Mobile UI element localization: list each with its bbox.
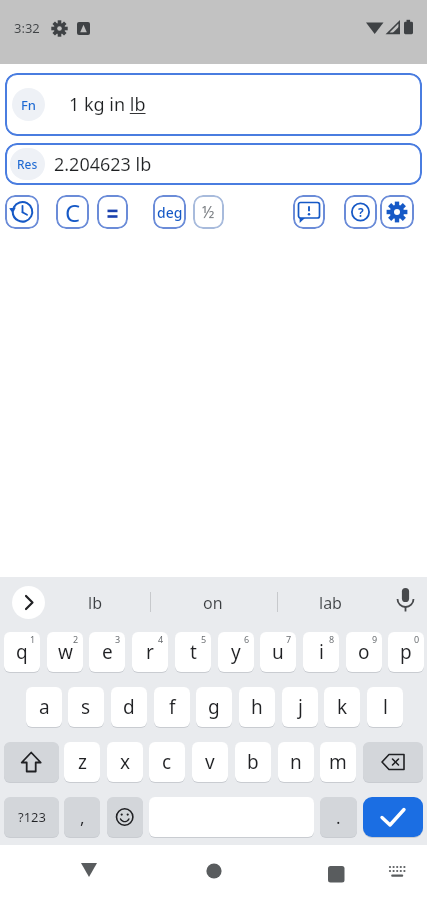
staticText: ½ bbox=[202, 201, 215, 223]
button[interactable]: t bbox=[175, 632, 211, 672]
button[interactable]: j bbox=[282, 687, 318, 727]
button[interactable] bbox=[4, 742, 59, 782]
staticText: , bbox=[80, 806, 85, 829]
staticText: on bbox=[203, 592, 223, 614]
staticText: 1 kg in lb bbox=[69, 92, 146, 117]
button[interactable]: z bbox=[64, 742, 100, 782]
staticText: 0 bbox=[414, 633, 420, 645]
button[interactable]: e bbox=[89, 632, 125, 672]
button[interactable] bbox=[363, 742, 423, 782]
button[interactable]: deg bbox=[153, 195, 186, 229]
staticText: s bbox=[81, 694, 91, 720]
staticText: h bbox=[251, 694, 263, 720]
button[interactable]: s bbox=[68, 687, 104, 727]
button[interactable]: c bbox=[149, 742, 185, 782]
button[interactable]: on bbox=[173, 586, 253, 619]
staticText: v bbox=[205, 749, 215, 775]
button[interactable]: w bbox=[47, 632, 83, 672]
button[interactable] bbox=[293, 195, 325, 229]
staticText: lb bbox=[88, 592, 102, 614]
button[interactable]: lab bbox=[290, 586, 370, 619]
button[interactable]: p bbox=[388, 632, 424, 672]
staticText: ? bbox=[358, 204, 364, 220]
staticText: e bbox=[102, 639, 113, 665]
button[interactable]: u bbox=[260, 632, 296, 672]
button[interactable]: l bbox=[367, 687, 403, 727]
staticText: g bbox=[208, 694, 220, 720]
staticText: lab bbox=[319, 592, 342, 614]
button[interactable]: v bbox=[192, 742, 228, 782]
button[interactable] bbox=[5, 143, 422, 185]
staticText: w bbox=[58, 639, 73, 665]
button[interactable] bbox=[5, 73, 422, 136]
button[interactable]: , bbox=[64, 797, 100, 837]
staticText: 3 bbox=[115, 633, 121, 645]
staticText: b bbox=[247, 749, 259, 775]
button[interactable]: d bbox=[111, 687, 147, 727]
staticText: . bbox=[336, 806, 341, 829]
staticText: z bbox=[78, 749, 87, 775]
staticText: q bbox=[16, 639, 28, 665]
button[interactable] bbox=[377, 852, 417, 892]
staticText: Fn bbox=[21, 96, 37, 114]
staticText: j bbox=[298, 694, 303, 720]
button[interactable] bbox=[107, 797, 143, 837]
staticText: o bbox=[358, 639, 370, 665]
staticText: l bbox=[383, 694, 388, 720]
button[interactable]: m bbox=[320, 742, 356, 782]
staticText: 6 bbox=[244, 633, 250, 645]
staticText: d bbox=[123, 694, 135, 720]
staticText: x bbox=[120, 749, 131, 775]
button[interactable] bbox=[194, 852, 234, 892]
button[interactable]: o bbox=[346, 632, 382, 672]
button[interactable]: h bbox=[239, 687, 275, 727]
staticText: n bbox=[290, 749, 302, 775]
staticText: m bbox=[329, 749, 347, 775]
button[interactable]: k bbox=[324, 687, 360, 727]
staticText: i bbox=[319, 639, 324, 665]
staticText: ?123 bbox=[18, 808, 46, 826]
staticText: 8 bbox=[329, 633, 335, 645]
button[interactable]: f bbox=[154, 687, 190, 727]
button[interactable]: a bbox=[26, 687, 62, 727]
button[interactable]: b bbox=[235, 742, 271, 782]
staticText: u bbox=[272, 639, 284, 665]
staticText: c bbox=[162, 749, 172, 775]
button[interactable]: ½ bbox=[193, 195, 224, 229]
staticText: t bbox=[190, 639, 197, 665]
button[interactable]: ? bbox=[344, 195, 377, 229]
button[interactable] bbox=[363, 797, 423, 837]
button[interactable] bbox=[380, 195, 414, 229]
staticText: 4 bbox=[158, 633, 164, 645]
button[interactable] bbox=[12, 586, 45, 619]
staticText: C bbox=[65, 196, 81, 229]
staticText: 3:32 bbox=[14, 19, 40, 36]
button[interactable]: . bbox=[320, 797, 357, 837]
button[interactable]: ?123 bbox=[4, 797, 59, 837]
staticText: k bbox=[337, 694, 348, 720]
staticText: y bbox=[231, 639, 241, 665]
button[interactable]: x bbox=[107, 742, 143, 782]
button[interactable]: r bbox=[132, 632, 168, 672]
button[interactable] bbox=[97, 195, 128, 229]
button[interactable]: lb bbox=[55, 586, 135, 619]
staticText: r bbox=[146, 639, 154, 665]
button[interactable] bbox=[70, 852, 110, 892]
staticText: p bbox=[400, 639, 412, 665]
button[interactable]: y bbox=[218, 632, 254, 672]
staticText: f bbox=[169, 694, 176, 720]
staticText: Res bbox=[17, 156, 38, 172]
button[interactable]: i bbox=[303, 632, 339, 672]
staticText: 5 bbox=[201, 633, 207, 645]
staticText: 7 bbox=[286, 633, 292, 645]
button[interactable]: g bbox=[196, 687, 232, 727]
button[interactable] bbox=[316, 852, 356, 892]
staticText: a bbox=[39, 694, 50, 720]
button[interactable] bbox=[5, 195, 39, 229]
staticText: 1 bbox=[30, 633, 36, 645]
button[interactable]: q bbox=[4, 632, 40, 672]
button[interactable]: n bbox=[278, 742, 314, 782]
staticText: 2 bbox=[73, 633, 79, 645]
button[interactable]: C bbox=[56, 195, 89, 229]
